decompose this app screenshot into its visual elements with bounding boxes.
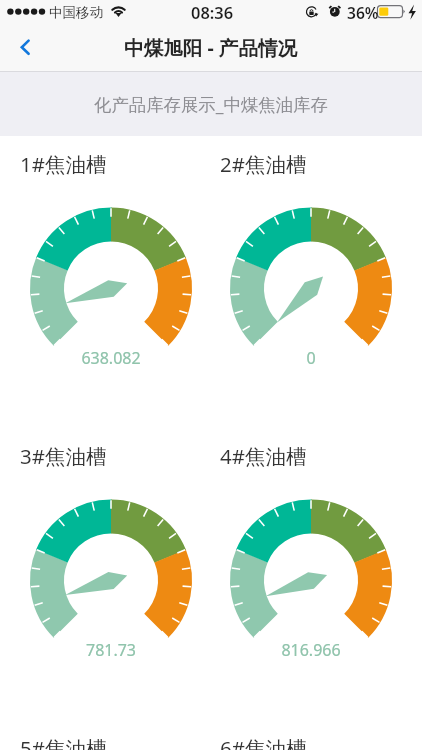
staticText: 化产品库存展示_中煤焦油库存	[94, 92, 328, 116]
staticText: 638.082	[51, 347, 171, 369]
staticText: 6#焦油槽	[220, 734, 307, 750]
staticText: 816.966	[251, 639, 371, 661]
button[interactable]: 2#焦油槽	[218, 148, 348, 180]
staticText: 2#焦油槽	[220, 150, 307, 178]
staticText: 3#焦油槽	[20, 442, 107, 470]
staticText: 中煤旭阳 - 产品情况	[124, 34, 298, 61]
button[interactable]: 5#焦油槽	[18, 732, 148, 750]
button[interactable]: Back	[0, 25, 46, 71]
staticText: 5#焦油槽	[20, 734, 107, 750]
staticText: 781.73	[51, 639, 171, 661]
staticText: 1#焦油槽	[20, 150, 107, 178]
button[interactable]: 6#焦油槽	[218, 732, 348, 750]
button[interactable]: 3#焦油槽	[18, 440, 148, 472]
staticText: 08:36	[191, 1, 234, 23]
button[interactable]: 4#焦油槽	[218, 440, 348, 472]
staticText: 中国移动	[49, 4, 103, 21]
button[interactable]: 1#焦油槽	[18, 148, 148, 180]
staticText: 0	[251, 347, 371, 369]
staticText: 4#焦油槽	[220, 442, 307, 470]
staticText: 36%	[347, 2, 379, 23]
